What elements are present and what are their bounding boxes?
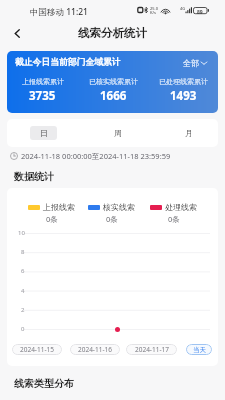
button[interactable]: 2024-11-16 [70,344,120,355]
staticText: 线索分析统计 [78,26,147,40]
staticText: 线索类型分布 [14,377,74,390]
staticText: 89 [197,9,203,16]
staticText: 4G [180,6,186,11]
staticText: 6 [21,267,25,275]
staticText: 日 [40,128,48,138]
staticText: 4 [21,287,25,295]
button[interactable]: 周 [104,126,131,140]
staticText: 当天 [193,346,206,354]
staticText: 上报线索累计 [22,77,64,86]
staticText: 1493 [170,88,197,104]
staticText: 1666 [100,88,127,104]
staticText: 中国移动 11:21 [30,6,88,18]
staticText: 全部 [183,58,199,68]
button[interactable]: 2024-11-15 [12,344,62,355]
staticText: 核实线索 [103,202,135,212]
button[interactable]: 全部 [183,58,207,68]
staticText: 已处理线索累计 [159,77,208,86]
staticText: 2024-11-16 [78,345,112,354]
staticText: 8 [21,248,25,256]
staticText: 3735 [29,88,56,104]
button[interactable]: 2024-11-17 [126,344,177,355]
staticText: 2 [21,306,25,314]
staticText: 2024-11-15 [20,345,54,354]
staticText: 0条 [46,214,58,224]
staticText: 数据统计 [14,170,54,183]
button[interactable]: 月 [175,126,202,140]
staticText: 25.0 [150,6,158,11]
staticText: 10 [18,229,25,237]
button[interactable]: Back [6,22,28,44]
button[interactable]: 日 [30,126,57,140]
staticText: 处理线索 [165,202,197,212]
button[interactable]: 当天 [186,344,212,355]
staticText: 截止今日当前部门全域累计 [15,57,121,68]
staticText: 已核实线索累计 [89,77,138,86]
staticText: 月 [185,128,193,138]
staticText: 0 [21,325,25,333]
staticText: 0条 [106,214,118,224]
staticText: 2024-11-17 [135,345,169,354]
staticText: 2024-11-18 00:00:00至2024-11-18 23:59:59 [21,151,171,161]
staticText: 0条 [168,214,180,224]
staticText: K/s [150,10,157,15]
staticText: 上报线索 [43,202,75,212]
staticText: 周 [114,128,122,138]
